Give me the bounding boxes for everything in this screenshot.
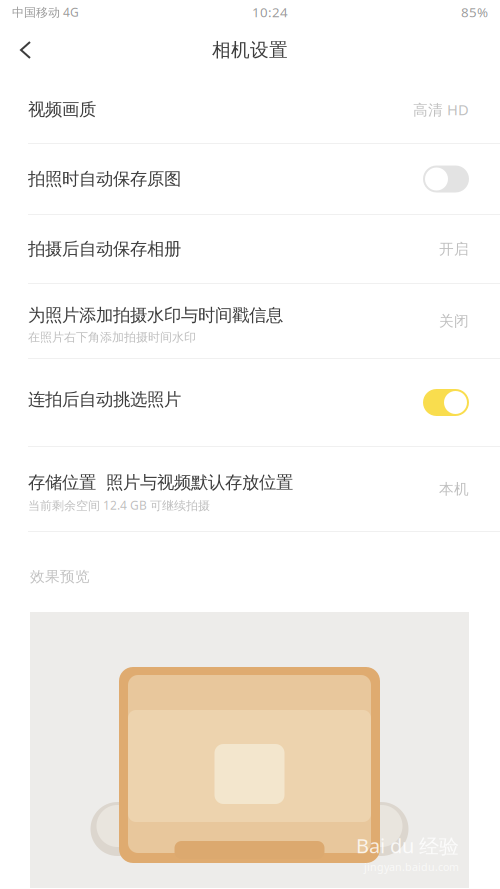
button[interactable]: 拍摄后自动保存相册 — [0, 215, 500, 283]
staticText: 85% — [461, 3, 488, 21]
staticText: Bai du 经验 — [356, 832, 459, 859]
staticText: 10:24 — [252, 3, 288, 21]
button[interactable]: 拍照时自动保存原图 — [0, 144, 500, 214]
staticText: 关闭 — [439, 312, 469, 330]
staticText: jingyan.baidu.com — [364, 860, 459, 874]
staticText: 为照片添加拍摄水印与时间戳信息 — [28, 304, 283, 326]
button[interactable]: Back — [4, 26, 48, 74]
button[interactable]: 存储位置 照片与视频默认存放位置 — [0, 447, 500, 531]
staticText: 本机 — [439, 480, 469, 498]
staticText: 拍摄后自动保存相册 — [28, 238, 181, 260]
staticText: 连拍后自动挑选照片 — [28, 389, 181, 410]
staticText: 在照片右下角添加拍摄时间水印 — [28, 330, 196, 344]
staticText: 开启 — [439, 240, 469, 258]
button[interactable]: 为照片添加拍摄水印与时间戳信息 — [0, 284, 500, 358]
staticText: 拍照时自动保存原图 — [28, 168, 181, 190]
staticText: 视频画质 — [28, 99, 96, 120]
staticText: 中国移动 4G — [12, 4, 79, 20]
staticText: 存储位置 照片与视频默认存放位置 — [28, 472, 293, 493]
button[interactable]: 连拍后自动挑选照片 — [0, 359, 500, 446]
button[interactable]: 视频画质 — [0, 76, 500, 143]
staticText: 高清 HD — [413, 100, 469, 119]
staticText: 当前剩余空间 12.4 GB 可继续拍摄 — [28, 497, 210, 513]
staticText: 效果预览 — [30, 567, 90, 585]
staticText: 相机设置 — [212, 38, 288, 61]
